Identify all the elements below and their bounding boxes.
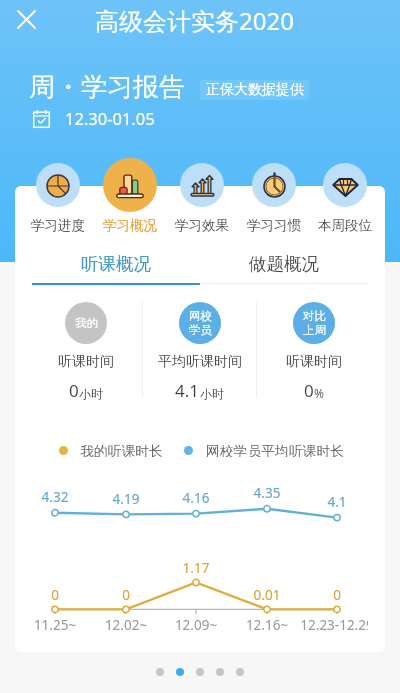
staticText: 网校 学员 — [189, 309, 212, 338]
staticText: % — [314, 385, 324, 401]
staticText: 0 — [30, 586, 80, 604]
staticText: 本周段位 — [318, 217, 372, 234]
button[interactable]: 学习效果 — [166, 158, 238, 234]
staticText: 1.17 — [171, 559, 221, 577]
staticText: 4.19 — [101, 490, 151, 508]
staticText: 高级会计实务2020 — [95, 4, 294, 37]
staticText: 做题概况 — [249, 253, 319, 275]
staticText: 12.30-01.05 — [65, 107, 155, 129]
staticText: 0.01 — [242, 586, 292, 604]
staticText: 小时 — [200, 386, 224, 401]
staticText: 12.16~ — [227, 616, 307, 634]
staticText: 12.09~ — [156, 616, 236, 634]
button[interactable]: 学习习惯 — [238, 158, 310, 234]
staticText: 4.35 — [242, 484, 292, 502]
button[interactable]: 学习概况 — [94, 158, 166, 234]
staticText: 4.1 — [175, 379, 200, 402]
staticText: 我的 — [75, 316, 98, 330]
staticText: 小时 — [79, 386, 103, 401]
staticText: 学习习惯 — [247, 217, 301, 234]
button[interactable]: 学习进度 — [22, 158, 94, 234]
button[interactable]: 做题概况 — [200, 253, 368, 275]
staticText: 0 — [312, 586, 362, 604]
staticText: 对比 上周 — [303, 309, 326, 338]
button[interactable]: Close — [12, 5, 40, 33]
staticText: 11.25~ — [15, 616, 95, 634]
staticText: 12.23-12.29 — [297, 616, 368, 634]
staticText: 听课时间 — [58, 353, 114, 371]
staticText: 4.32 — [30, 488, 80, 506]
staticText: 4.16 — [171, 489, 221, 507]
staticText: 0 — [69, 379, 79, 402]
staticText: 我的听课时长 — [80, 443, 163, 457]
staticText: 学习进度 — [31, 217, 85, 234]
button[interactable]: 听课概况 — [32, 253, 200, 275]
staticText: 听课时间 — [286, 353, 342, 371]
staticText: 周・学习报告 — [29, 71, 185, 104]
staticText: 学习概况 — [103, 217, 157, 234]
staticText: 学习效果 — [175, 217, 229, 234]
staticText: 网校学员平均听课时长 — [206, 443, 344, 457]
staticText: 12.02~ — [86, 616, 166, 634]
staticText: 4.1 — [312, 493, 362, 511]
staticText: 听课概况 — [81, 253, 151, 275]
staticText: 正保大数据提供 — [206, 81, 304, 99]
staticText: 平均听课时间 — [158, 353, 242, 371]
staticText: 0 — [304, 379, 314, 402]
button[interactable]: 本周段位 — [310, 158, 380, 234]
staticText: 0 — [101, 586, 151, 604]
